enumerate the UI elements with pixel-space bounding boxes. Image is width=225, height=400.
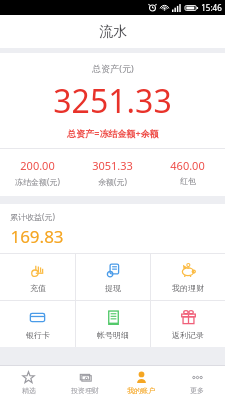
staticText: 精选 <box>22 386 36 395</box>
staticText: 3251.33 <box>53 79 172 123</box>
staticText: 我的理财 <box>172 283 204 293</box>
button[interactable]: 200.00 <box>0 158 75 187</box>
button[interactable]: 返利记录 <box>151 301 225 347</box>
staticText: 15:46 <box>201 2 222 13</box>
other: 提现 <box>105 262 122 279</box>
staticText: 提现 <box>105 283 121 293</box>
staticText: 流水 <box>99 23 127 41</box>
staticText: 帐号明细 <box>97 330 129 340</box>
button[interactable]: 更多 <box>169 366 225 400</box>
button[interactable]: 提现 <box>76 254 150 300</box>
staticText: 返利记录 <box>172 330 204 340</box>
button[interactable]: 3051.33 <box>75 158 150 187</box>
staticText: 红包 <box>180 176 196 186</box>
staticText: 总资产(元) <box>92 62 134 74</box>
staticText: 169.83 <box>10 225 64 248</box>
button[interactable]: 充值 <box>0 254 75 300</box>
button[interactable]: 投资理财 <box>57 366 113 400</box>
staticText: 累计收益(元) <box>10 211 55 222</box>
other: 银行卡 <box>29 309 46 326</box>
staticText: 总资产=冻结金额+余额 <box>67 127 159 139</box>
button[interactable]: 我的理财 <box>151 254 225 300</box>
staticText: 充值 <box>30 283 46 293</box>
button[interactable]: 460.00 <box>150 158 225 186</box>
other: 返利记录 <box>180 309 197 326</box>
button[interactable]: 帐号明细 <box>76 301 150 347</box>
staticText: 200.00 <box>20 158 55 173</box>
staticText: 投资理财 <box>71 386 99 395</box>
staticText: 更多 <box>190 386 204 395</box>
staticText: 我的账户 <box>127 386 155 395</box>
other: 我的理财 <box>180 262 197 279</box>
staticText: 余额(元) <box>98 176 127 187</box>
button[interactable]: 精选 <box>0 366 57 400</box>
staticText: 银行卡 <box>26 330 50 340</box>
other: 充值 <box>29 262 46 279</box>
button[interactable]: 银行卡 <box>0 301 75 347</box>
button[interactable]: 我的账户 <box>113 366 169 400</box>
staticText: 460.00 <box>170 158 205 173</box>
other: 帐号明细 <box>105 309 122 326</box>
staticText: 3051.33 <box>92 158 133 173</box>
staticText: 冻结金额(元) <box>15 176 60 187</box>
